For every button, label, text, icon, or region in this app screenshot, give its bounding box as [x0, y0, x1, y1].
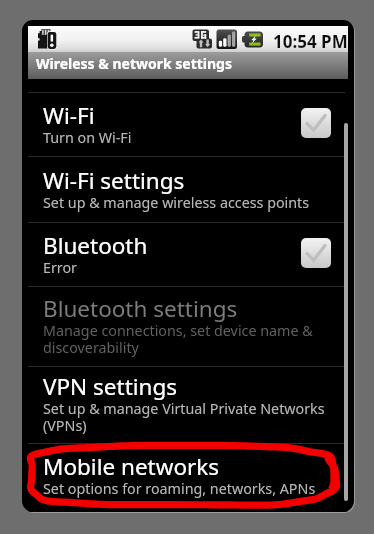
staticText: Turn on Wi-Fi — [43, 128, 132, 147]
staticText: Set options for roaming, networks, APNs — [43, 479, 316, 498]
button[interactable]: VPN settings — [28, 367, 348, 443]
button[interactable]: Toggle — [301, 108, 331, 138]
staticText: Wi-Fi — [43, 100, 95, 131]
staticText: VPN settings — [43, 371, 178, 402]
staticText: Set up & manage wireless access points — [43, 193, 310, 212]
button[interactable]: Wi-Fi settings — [28, 157, 348, 222]
button[interactable]: Toggle — [301, 238, 331, 268]
staticText: Error — [43, 258, 78, 277]
staticText: Bluetooth settings — [43, 293, 238, 324]
staticText: Bluetooth — [43, 230, 148, 261]
staticText: Manage connections, set device name & di… — [43, 321, 340, 358]
button[interactable]: Wi-Fi — [28, 93, 348, 156]
staticText: Wi-Fi settings — [43, 165, 185, 196]
button[interactable]: Bluetooth settings — [28, 287, 348, 366]
staticText: 10:54 PM — [273, 30, 348, 53]
button[interactable]: Mobile networks — [28, 444, 348, 508]
staticText: Set up & manage Virtual Private Networks… — [43, 399, 340, 436]
staticText: Mobile networks — [43, 451, 220, 482]
button[interactable]: Bluetooth — [28, 223, 348, 286]
staticText: Wireless & network settings — [36, 54, 232, 73]
